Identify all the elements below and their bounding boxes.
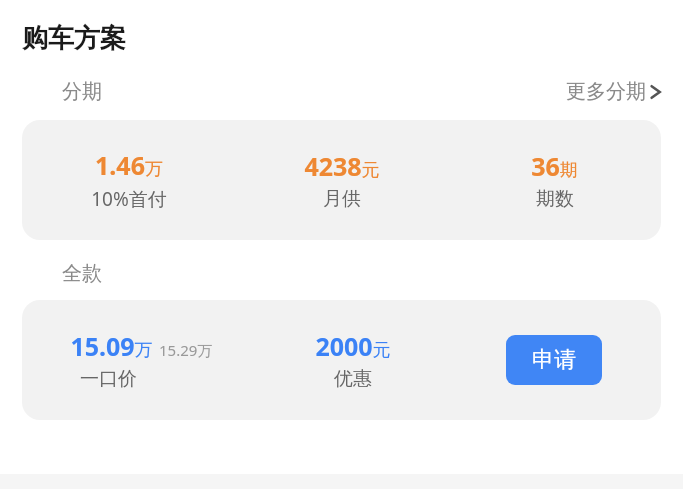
staticText: 申请 <box>532 346 576 374</box>
button[interactable]: 1.46万 <box>22 120 661 240</box>
staticText: 一口价 <box>80 367 137 391</box>
staticText: 期数 <box>536 187 574 211</box>
staticText: 购车方案 <box>22 22 126 55</box>
button[interactable]: 更多分期 <box>564 77 663 106</box>
staticText: 2000元 <box>315 329 391 363</box>
staticText: 10%首付 <box>91 186 167 212</box>
staticText: 15.29万 <box>159 340 213 360</box>
staticText: 月供 <box>323 187 361 211</box>
staticText: 全款 <box>62 261 102 286</box>
button[interactable]: 申请 <box>506 335 602 385</box>
staticText: 优惠 <box>334 367 372 391</box>
staticText: 分期 <box>62 79 102 104</box>
staticText: 15.09万 <box>70 329 153 363</box>
staticText: 1.46万 <box>95 148 163 182</box>
staticText: 4238元 <box>304 149 380 183</box>
staticText: 更多分期 <box>566 79 646 104</box>
staticText: 36期 <box>531 149 578 183</box>
